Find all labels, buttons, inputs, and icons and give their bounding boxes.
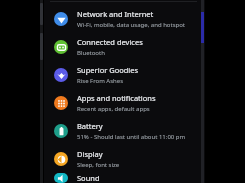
staticText: Wi-Fi, mobile, data usage, and hotspot	[77, 21, 185, 29]
staticText: Recent apps, default apps	[77, 105, 150, 113]
staticText: Connected devices	[77, 37, 143, 47]
button[interactable]: Superior Goodies	[44, 61, 205, 89]
staticText: 51% - Should last until about 11:00 pm	[77, 133, 186, 141]
staticText: Apps and notifications	[77, 93, 156, 103]
staticText: Display	[77, 149, 103, 159]
button[interactable]: Display	[44, 145, 205, 173]
button[interactable]: Sound	[44, 173, 205, 183]
staticText: Sleep, font size	[77, 161, 120, 169]
staticText: Sound	[77, 173, 100, 183]
button[interactable]: Connected devices	[44, 33, 205, 61]
staticText: Superior Goodies	[77, 65, 139, 75]
staticText: Battery	[77, 121, 103, 131]
staticText: Bluetooth	[77, 49, 105, 57]
staticText: Network and Internet	[77, 9, 154, 19]
button[interactable]: Battery	[44, 117, 205, 145]
button[interactable]: Apps and notifications	[44, 89, 205, 117]
button[interactable]: Network and Internet	[44, 5, 205, 33]
staticText: Rise From Ashes	[77, 77, 124, 85]
